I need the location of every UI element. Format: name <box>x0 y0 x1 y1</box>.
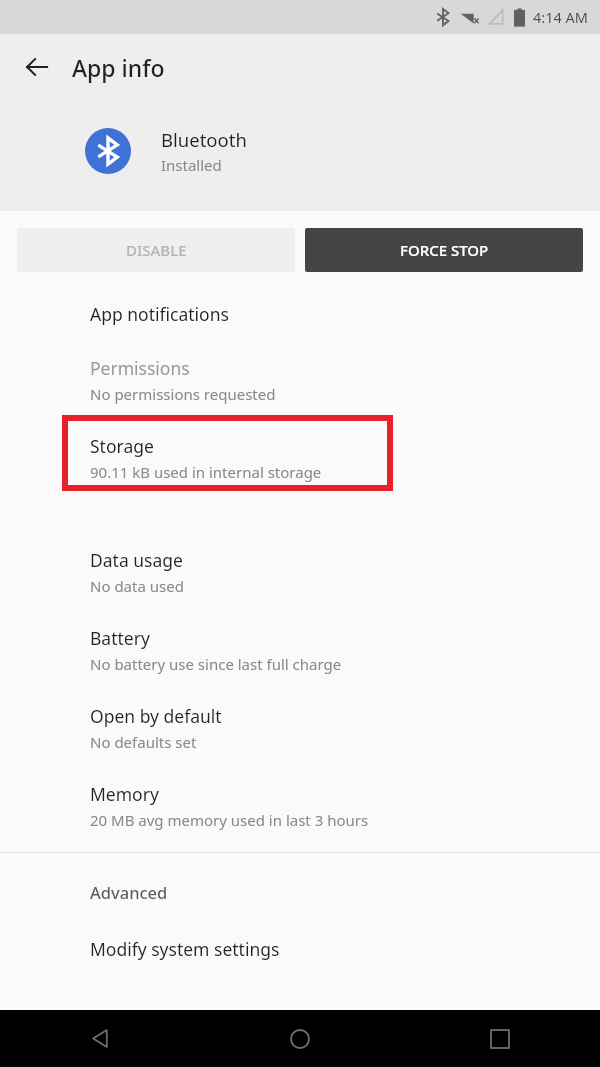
staticText: Modify system settings <box>90 937 280 961</box>
button[interactable]: Modify system settings <box>0 937 600 961</box>
staticText: 90.11 kB used in internal storage <box>90 462 322 482</box>
button[interactable]: Permissions <box>0 356 600 404</box>
staticText: Data usage <box>90 548 183 572</box>
staticText: Memory <box>90 782 159 806</box>
staticText: 20 MB avg memory used in last 3 hours <box>90 810 369 830</box>
button[interactable]: Home <box>200 1010 400 1067</box>
staticText: No defaults set <box>90 732 197 752</box>
button[interactable]: App notifications <box>0 294 600 334</box>
button[interactable]: Back <box>9 39 65 95</box>
staticText: Open by default <box>90 704 222 728</box>
button[interactable]: Recent apps <box>400 1010 600 1067</box>
staticText: Permissions <box>90 356 190 380</box>
staticText: Advanced <box>90 881 168 903</box>
button[interactable]: FORCE STOP <box>305 228 583 272</box>
staticText: 4:14 AM <box>533 7 588 27</box>
button[interactable]: Storage <box>0 434 600 482</box>
staticText: Installed <box>161 155 222 175</box>
button[interactable]: Data usage <box>0 548 600 596</box>
button[interactable]: Battery <box>0 626 600 674</box>
staticText: Storage <box>90 434 154 458</box>
staticText: App notifications <box>90 302 229 326</box>
staticText: No data used <box>90 576 184 596</box>
button[interactable]: Advanced <box>0 881 600 903</box>
button[interactable]: Back <box>0 1010 200 1067</box>
button[interactable]: Memory <box>0 782 600 830</box>
staticText: No battery use since last full charge <box>90 654 342 674</box>
button[interactable]: DISABLE <box>17 228 295 272</box>
staticText: DISABLE <box>126 240 187 260</box>
staticText: App info <box>72 52 165 83</box>
staticText: No permissions requested <box>90 384 276 404</box>
staticText: Bluetooth <box>161 127 247 152</box>
button[interactable]: Open by default <box>0 704 600 752</box>
staticText: Battery <box>90 626 150 650</box>
staticText: FORCE STOP <box>400 240 489 260</box>
